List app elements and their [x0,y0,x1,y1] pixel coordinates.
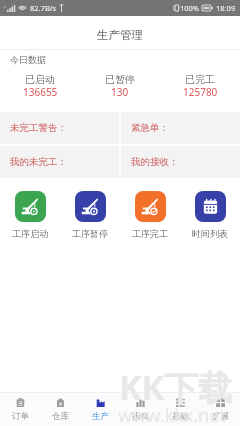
staticText: 18:09 [216,3,236,13]
button[interactable]: 报表 [120,398,160,422]
staticText: www.kkx.net [118,403,226,426]
button[interactable]: 基础 [160,398,200,422]
staticText: KK下载 [119,364,233,410]
button[interactable]: 工序启动 [0,191,60,239]
staticText: 100% [180,3,200,13]
button[interactable]: 工序完工 [120,191,180,239]
staticText: 报表 [132,411,149,422]
staticText: 82.7B/s [30,3,57,13]
button[interactable]: 已完工 [160,73,240,99]
button[interactable]: 已启动 [0,73,80,99]
staticText: 130 [111,85,129,99]
button[interactable]: 生产 [80,398,120,422]
button[interactable]: 订单 [0,398,40,422]
staticText: 已启动 [25,73,55,86]
staticText: 订单 [12,411,29,422]
staticText: 时间列表 [192,228,228,239]
staticText: 125780 [183,85,218,99]
staticText: 我的接收： [131,156,179,168]
staticText: 我的未完工： [10,156,67,168]
button[interactable]: 扩展 [200,398,240,422]
button[interactable]: 我的接收： [121,146,240,178]
staticText: 已暂停 [105,73,135,86]
staticText: 工序暂停 [72,228,108,239]
staticText: 紧急单： [131,122,169,134]
button[interactable]: 仓库 [40,398,80,422]
button[interactable]: 已暂停 [80,73,160,99]
button[interactable]: 工序暂停 [60,191,120,239]
staticText: 136655 [23,85,58,99]
staticText: 生产管理 [97,28,143,42]
staticText: 基础 [172,411,189,422]
button[interactable]: 紧急单： [121,112,240,144]
staticText: 未完工警告： [10,122,67,134]
staticText: 生产 [92,411,109,422]
button[interactable]: 时间列表 [180,191,240,239]
button[interactable]: 我的未完工： [0,146,119,178]
staticText: 今日数据 [10,54,46,65]
staticText: 已完工 [185,73,215,86]
button[interactable]: 未完工警告： [0,112,119,144]
staticText: 工序启动 [12,228,48,239]
staticText: 扩展 [212,411,229,422]
staticText: 工序完工 [132,228,168,239]
staticText: 仓库 [52,411,69,422]
